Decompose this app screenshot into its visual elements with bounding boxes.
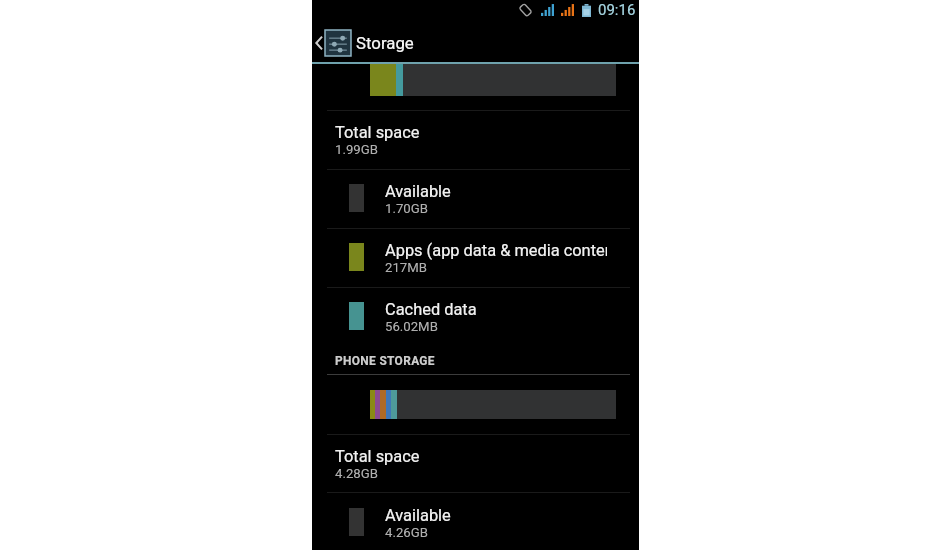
staticText: 1.70GB	[385, 201, 428, 216]
button[interactable]: Available	[312, 169, 639, 228]
button[interactable]: Navigate up	[312, 22, 639, 61]
staticText: 09:16	[598, 1, 636, 19]
staticText: Available	[385, 506, 451, 525]
button[interactable]: Cached data	[312, 287, 639, 346]
staticText: Cached data	[385, 300, 477, 319]
button[interactable]: Available	[312, 493, 639, 550]
button[interactable]: Total space	[312, 110, 639, 169]
staticText: 217MB	[385, 260, 427, 275]
staticText: 56.02MB	[385, 319, 438, 334]
staticText: Available	[385, 182, 451, 201]
staticText: PHONE STORAGE	[335, 354, 435, 368]
staticText: 1.99GB	[335, 142, 378, 157]
staticText: Total space	[335, 123, 420, 142]
staticText: Storage	[356, 33, 414, 53]
staticText: Total space	[335, 447, 420, 466]
other: Navigate up	[315, 36, 323, 50]
button[interactable]: Total space	[312, 434, 639, 493]
staticText: Apps (app data & media content)	[385, 241, 607, 260]
staticText: 4.26GB	[385, 525, 428, 540]
button[interactable]: Apps (app data & media content)	[312, 228, 639, 287]
staticText: 4.28GB	[335, 466, 378, 481]
